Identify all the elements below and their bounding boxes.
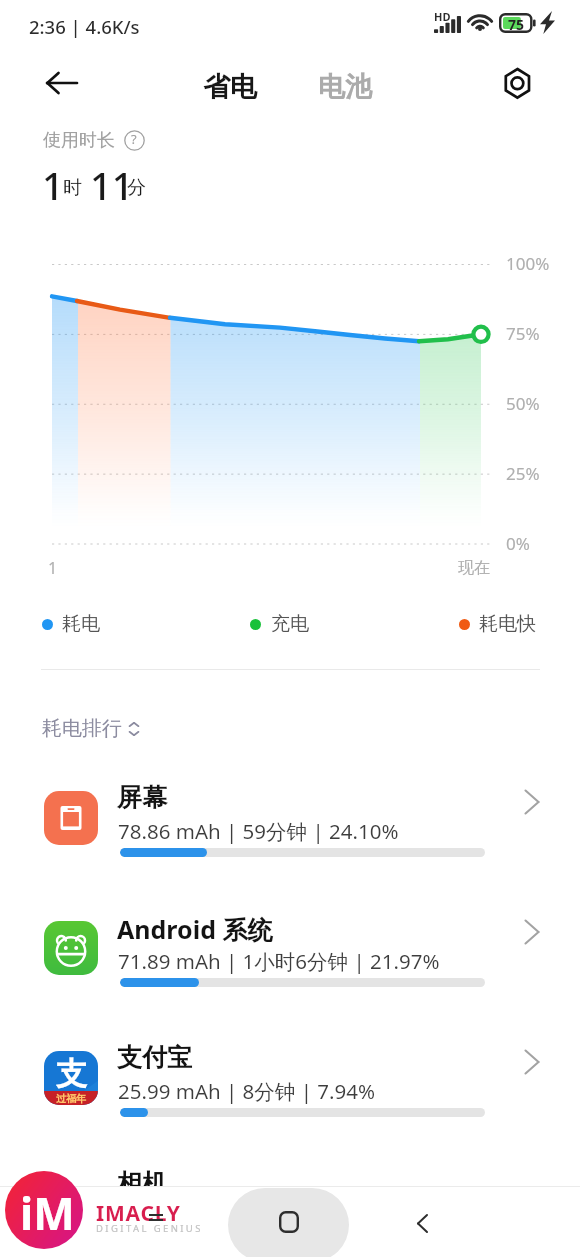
button[interactable]: 返回: [31, 60, 93, 108]
staticText: Android 系统: [117, 912, 273, 946]
staticText: 耗电排行: [42, 716, 122, 741]
staticText: 100%: [506, 252, 550, 275]
button[interactable]: 耗电: [38, 610, 104, 638]
staticText: 75: [508, 15, 525, 34]
staticText: 75%: [506, 322, 540, 345]
staticText: IMACLY: [96, 1199, 181, 1228]
button[interactable]: 支: [0, 1024, 580, 1154]
staticText: 50%: [506, 392, 540, 415]
button[interactable]: 屏幕: [0, 764, 580, 894]
staticText: 0%: [506, 532, 530, 555]
staticText: 使用时长: [43, 129, 115, 152]
staticText: 11: [90, 159, 134, 211]
staticText: 25%: [506, 462, 540, 485]
staticText: 支: [56, 1054, 87, 1093]
button[interactable]: 相机: [0, 1150, 580, 1210]
button[interactable]: 详情: [514, 784, 550, 820]
staticText: 电池: [318, 70, 372, 104]
button[interactable]: 耗电排行: [36, 712, 146, 744]
button[interactable]: Android 系统: [0, 894, 580, 1024]
staticText: 屏幕: [117, 782, 167, 813]
button[interactable]: 详情: [514, 914, 550, 950]
staticText: 耗电快: [479, 612, 536, 636]
button[interactable]: 电池: [310, 64, 380, 110]
staticText: 充电: [271, 612, 309, 636]
staticText: HD: [434, 9, 451, 24]
staticText: ?: [131, 130, 137, 148]
staticText: 71.89 mAh | 1小时6分钟 | 21.97%: [118, 947, 440, 975]
button[interactable]: 耗电快: [455, 610, 540, 638]
button[interactable]: 说明: [122, 128, 146, 152]
button[interactable]: 详情: [514, 1044, 550, 1080]
staticText: 78.86 mAh | 59分钟 | 24.10%: [118, 817, 399, 845]
staticText: 现在: [458, 558, 490, 578]
staticText: 时: [63, 176, 82, 200]
staticText: 分: [127, 176, 146, 200]
staticText: 相机: [117, 1168, 167, 1199]
staticText: 耗电: [62, 612, 100, 636]
button[interactable]: 主页: [228, 1188, 349, 1257]
staticText: 1: [48, 557, 58, 579]
staticText: 省电: [203, 70, 257, 104]
staticText: iM: [20, 1183, 75, 1243]
button[interactable]: 省电: [195, 64, 265, 110]
button[interactable]: 返回: [396, 1196, 448, 1250]
staticText: 1: [42, 159, 64, 211]
staticText: 2:36 | 4.6K/s: [29, 14, 140, 39]
staticText: 25.99 mAh | 8分钟 | 7.94%: [118, 1077, 376, 1105]
button[interactable]: 设置: [492, 58, 544, 110]
button[interactable]: 充电: [246, 610, 313, 638]
staticText: 支付宝: [117, 1042, 192, 1073]
staticText: DIGITAL GENIUS: [96, 1222, 203, 1235]
staticText: 过福年: [56, 1092, 86, 1105]
